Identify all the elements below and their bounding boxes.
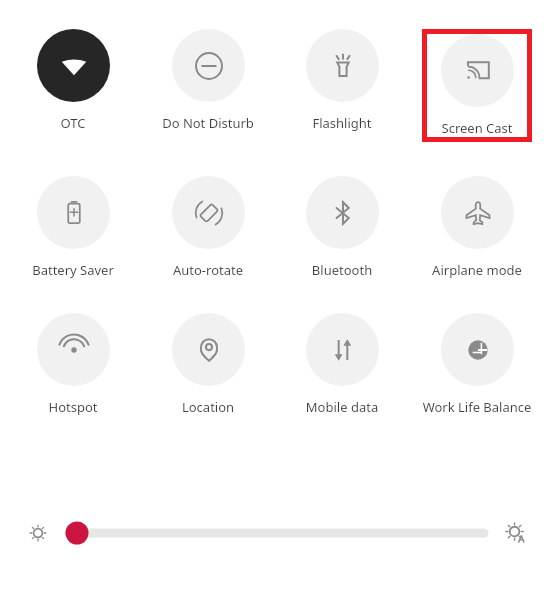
button[interactable]: Do Not Disturb (147, 29, 269, 132)
button[interactable]: Auto brightness (500, 517, 532, 549)
staticText: Bluetooth (281, 261, 403, 279)
button[interactable]: Mobile data (281, 313, 403, 416)
button[interactable]: Screen Cast (427, 34, 527, 137)
staticText: OTC (12, 114, 134, 132)
staticText: Flashlight (281, 114, 403, 132)
button[interactable]: OTC (12, 29, 134, 132)
button[interactable]: Work Life Balance (416, 313, 538, 416)
staticText: Hotspot (12, 398, 134, 416)
button[interactable]: Auto-rotate (147, 176, 269, 279)
button[interactable]: Location (147, 313, 269, 416)
button[interactable]: Brightness slider (65, 519, 486, 547)
button[interactable]: Flashlight (281, 29, 403, 132)
staticText: Battery Saver (12, 261, 134, 279)
staticText: Do Not Disturb (147, 114, 269, 132)
staticText: Location (147, 398, 269, 416)
staticText: Mobile data (281, 398, 403, 416)
button[interactable]: Hotspot (12, 313, 134, 416)
button[interactable]: Airplane mode (416, 176, 538, 279)
staticText: Airplane mode (416, 261, 538, 279)
button[interactable]: Battery Saver (12, 176, 134, 279)
staticText: Auto-rotate (147, 261, 269, 279)
staticText: Screen Cast (427, 119, 527, 137)
staticText: Work Life Balance (416, 398, 538, 416)
button[interactable]: Minimum brightness (22, 517, 54, 549)
button[interactable]: Bluetooth (281, 176, 403, 279)
